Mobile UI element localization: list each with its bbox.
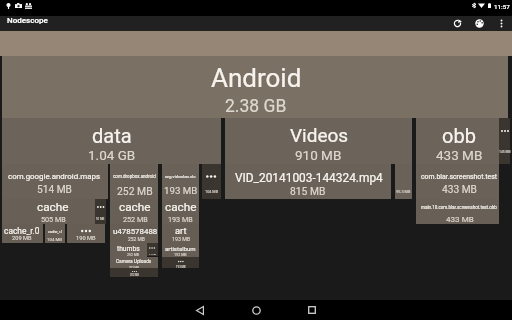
staticText: 95.3 MB [396, 189, 411, 194]
staticText: 505 MB [41, 215, 66, 223]
staticText: com.dropbox.android [113, 174, 156, 179]
staticText: 2.38 GB [225, 96, 287, 117]
staticText: 11 MB [149, 253, 157, 256]
staticText: 252 MB [128, 236, 145, 242]
button[interactable] [110, 199, 158, 224]
staticText: 10 MB [96, 217, 105, 220]
button[interactable]: More items [499, 118, 510, 164]
staticText: 193 MB [164, 185, 198, 196]
staticText: cache_r.0 [4, 226, 40, 236]
button[interactable]: Home [228, 300, 284, 320]
staticText: data [92, 124, 132, 147]
button[interactable] [2, 118, 221, 164]
button[interactable] [395, 164, 412, 199]
staticText: 104 MB [205, 189, 219, 193]
staticText: 11:57 [494, 3, 510, 10]
staticText: thumbs [117, 245, 140, 253]
button[interactable] [110, 243, 147, 258]
button[interactable]: Change colour palette [468, 16, 490, 31]
button[interactable] [162, 224, 199, 243]
staticText: 1.04 GB [88, 147, 136, 163]
button[interactable] [416, 118, 499, 164]
button[interactable] [162, 164, 199, 199]
staticText: 252 MB [127, 253, 140, 257]
button[interactable]: Nodescope [0, 16, 90, 31]
button[interactable]: More items [110, 268, 158, 277]
staticText: com.blar.screenshot.test [421, 173, 498, 181]
staticText: 193 MB [174, 253, 187, 257]
staticText: artistalbum [165, 245, 196, 252]
staticText: cache_r.1 [48, 230, 63, 234]
staticText: obb [442, 124, 476, 147]
staticText: com.google.android.maps [8, 172, 101, 181]
staticText: Nodescope [7, 16, 48, 25]
button[interactable] [225, 164, 391, 199]
staticText: cache [119, 200, 151, 214]
button[interactable] [110, 164, 158, 199]
button[interactable]: More items [202, 164, 221, 199]
staticText: 433 MB [446, 214, 474, 223]
button[interactable] [2, 56, 508, 118]
staticText: org.videolan.vlc [165, 174, 196, 179]
staticText: 514 MB [37, 184, 72, 196]
staticText: 190 MB [76, 235, 96, 242]
staticText: 104 MB [47, 237, 63, 242]
staticText: VID_20141003-144324.mp4 [235, 171, 383, 185]
staticText: 193 MB [172, 236, 191, 242]
staticText: 252 MB [117, 185, 153, 197]
button[interactable] [110, 224, 158, 243]
button[interactable]: More options [490, 16, 512, 31]
staticText: 252 MB [129, 266, 139, 269]
staticText: Android [211, 63, 302, 93]
staticText: 433 MB [442, 184, 477, 196]
staticText: 433 MB [436, 147, 483, 163]
staticText: cache [37, 200, 69, 214]
staticText: 815 MB [290, 185, 326, 197]
staticText: main.10.com.blar.screenshot.test.obb [421, 205, 497, 210]
button[interactable] [416, 199, 499, 224]
staticText: 145 MB [499, 150, 511, 154]
button[interactable]: Recent apps [284, 300, 340, 320]
button[interactable] [45, 224, 65, 243]
button[interactable]: Back [172, 300, 228, 320]
staticText: cache [165, 200, 197, 214]
staticText: 252 MB [123, 215, 148, 223]
button[interactable] [2, 199, 95, 224]
staticText: Videos [290, 124, 349, 146]
button[interactable] [110, 257, 158, 268]
button[interactable] [67, 224, 105, 243]
staticText: 193 MB [176, 265, 186, 268]
staticText: 193 MB [168, 215, 193, 223]
button[interactable] [225, 118, 412, 164]
button[interactable]: Refresh [446, 16, 468, 31]
button[interactable]: More items [95, 199, 106, 224]
staticText: 209 MB [12, 235, 32, 242]
button[interactable] [2, 224, 43, 243]
button[interactable] [2, 164, 108, 199]
button[interactable]: More items [147, 243, 158, 256]
staticText: art [175, 225, 187, 236]
staticText: u478578488 [113, 227, 158, 236]
button[interactable] [416, 164, 499, 199]
staticText: 252 MB [130, 274, 139, 277]
button[interactable]: More items [162, 257, 199, 268]
staticText: Camera Uploads [116, 259, 152, 265]
button[interactable] [162, 199, 199, 224]
staticText: 910 MB [295, 147, 342, 163]
button[interactable] [162, 243, 199, 257]
